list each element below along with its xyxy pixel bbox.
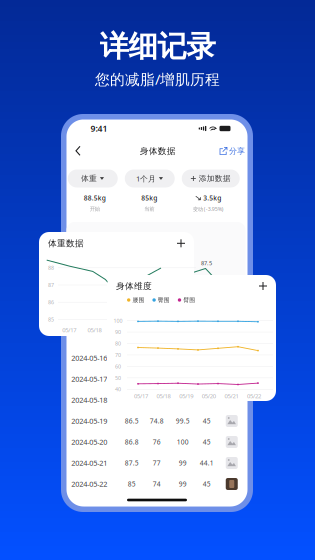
staticText: 2024-05-21 <box>71 458 107 468</box>
staticText: 腰围 <box>132 296 144 304</box>
staticText: 77 <box>153 458 161 468</box>
staticText: 100 <box>113 317 122 324</box>
button[interactable]: 添加体重 <box>177 239 185 247</box>
staticText: 85 <box>128 479 136 489</box>
staticText: 分享 <box>229 146 245 156</box>
staticText: 87.5 <box>125 458 139 468</box>
staticText: 9:41 <box>90 123 107 134</box>
staticText: 80 <box>115 340 121 347</box>
staticText: 添加数据 <box>199 174 231 183</box>
staticText: 100 <box>177 437 189 447</box>
staticText: 详细记录 <box>99 28 215 65</box>
staticText: 90 <box>115 328 121 336</box>
staticText: 05/18 <box>87 326 101 334</box>
staticText: 身体维度 <box>116 280 152 291</box>
staticText: 2024-05-17 <box>71 374 107 384</box>
staticText: 2024-05-20 <box>71 437 107 447</box>
staticText: 86.5 <box>125 416 139 426</box>
button[interactable]: 添加维度 <box>259 282 267 290</box>
staticText: 1个月 <box>136 173 156 184</box>
staticText: 85 <box>48 316 54 323</box>
staticText: 2024-05-16 <box>71 353 107 363</box>
staticText: 臀围 <box>158 296 170 304</box>
staticText: 45 <box>203 416 211 426</box>
button[interactable]: 返回 <box>70 142 86 160</box>
staticText: 86 <box>48 299 54 306</box>
staticText: 当前 <box>144 206 154 212</box>
button[interactable]: 分享 <box>219 142 245 160</box>
button[interactable]: 添加数据 <box>182 169 240 187</box>
staticText: 74 <box>153 479 161 489</box>
staticText: 88.5kg <box>84 193 106 203</box>
staticText: 99 <box>179 479 187 489</box>
staticText: 70 <box>115 351 121 359</box>
staticText: 体重 <box>81 174 97 183</box>
staticText: 44.1 <box>200 458 214 468</box>
staticText: 87 <box>48 281 54 289</box>
staticText: 50 <box>115 374 121 381</box>
staticText: 76 <box>153 437 161 447</box>
staticText: 74.8 <box>150 416 164 426</box>
staticText: 99 <box>179 458 187 468</box>
button[interactable]: 体重 <box>68 169 118 187</box>
staticText: 45 <box>203 437 211 447</box>
staticText: 身体数据 <box>140 145 176 156</box>
staticText: 45 <box>203 479 211 489</box>
staticText: 2024-05-18 <box>71 395 107 405</box>
staticText: 体重数据 <box>48 238 84 249</box>
staticText: 臂围 <box>183 296 195 304</box>
staticText: 05/18 <box>157 392 171 400</box>
staticText: 88 <box>48 264 54 271</box>
staticText: 开始 <box>90 206 100 212</box>
staticText: 变动 (-3.95%) <box>193 205 224 213</box>
staticText: 2024-05-19 <box>71 416 107 426</box>
staticText: 05/22 <box>247 392 261 400</box>
staticText: 05/17 <box>134 392 148 400</box>
staticText: 05/19 <box>179 392 193 400</box>
staticText: 2024-05-22 <box>71 479 107 489</box>
staticText: 05/21 <box>224 392 238 400</box>
staticText: 40 <box>115 386 121 393</box>
staticText: 85kg <box>141 193 157 203</box>
staticText: 86.8 <box>125 437 139 447</box>
staticText: 3.5kg <box>203 193 221 203</box>
staticText: 87.5 <box>201 259 212 267</box>
staticText: 05/17 <box>62 326 76 334</box>
staticText: 99.5 <box>176 416 190 426</box>
button[interactable]: 1个月 <box>125 169 175 187</box>
staticText: 05/20 <box>202 392 216 400</box>
staticText: 60 <box>115 363 121 370</box>
staticText: 您的减脂/增肌历程 <box>95 69 220 89</box>
